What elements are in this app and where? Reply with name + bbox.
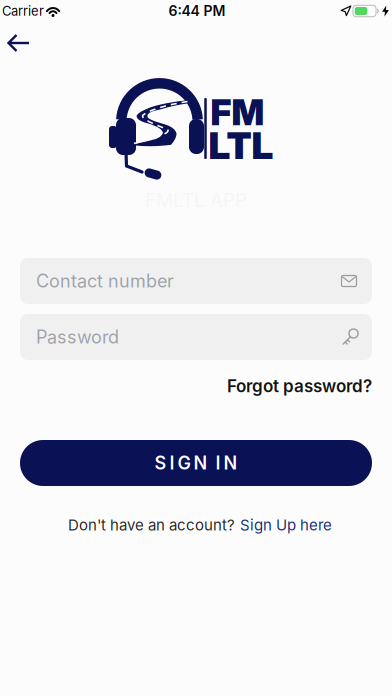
staticText: FM [210, 91, 264, 134]
button[interactable]: Sign Up here [240, 516, 332, 534]
button[interactable]: Password [20, 314, 372, 360]
staticText: Forgot password? [227, 376, 372, 396]
staticText: 6:44 PM [168, 2, 225, 19]
staticText: S I G N I N [154, 452, 237, 474]
button[interactable]: Contact number [20, 258, 372, 304]
staticText: LTL [208, 122, 273, 168]
staticText: Don't have an account? [68, 516, 235, 534]
button[interactable]: Back [6, 26, 50, 60]
staticText: Contact number [36, 270, 174, 292]
staticText: Password [36, 326, 119, 348]
staticText: Sign Up here [240, 516, 332, 534]
button[interactable]: S I G N I N [20, 440, 372, 486]
button[interactable]: Forgot password? [227, 376, 372, 396]
staticText: Carrier [2, 3, 44, 19]
